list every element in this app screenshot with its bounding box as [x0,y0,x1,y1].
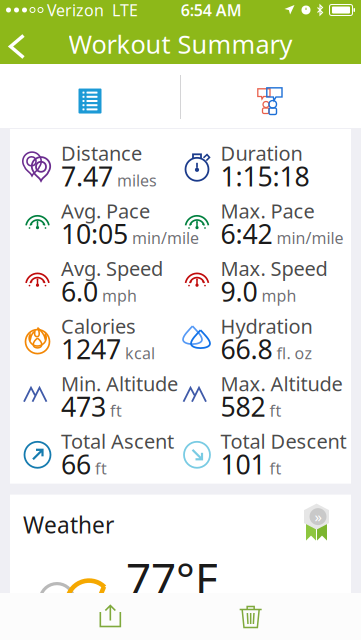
staticText: 6:54 AM [181,0,242,21]
staticText: mph [261,285,296,306]
button[interactable]: Share [80,593,140,639]
staticText: Max. Pace [220,197,314,224]
staticText: 77°F [126,549,218,607]
staticText: 10:05 [61,216,128,251]
staticText: ft [110,400,122,421]
staticText: kcal [125,342,155,364]
staticText: Verizon LTE [43,0,138,21]
staticText: Max. Speed [220,255,327,282]
staticText: Total Descent [220,428,346,454]
staticText: 7.47 [61,158,113,194]
staticText: Workout Summary [68,27,292,61]
staticText: Avg. Pace [61,197,150,224]
staticText: ft [269,400,281,421]
staticText: 6.0 [61,274,98,309]
staticText: 101 [220,446,265,482]
staticText: ft [95,458,107,479]
staticText: Min. Altitude [61,370,178,397]
button[interactable]: Summary [0,66,180,128]
staticText: Avg. Speed [61,255,163,282]
button[interactable]: Back [0,20,37,64]
staticText: » [314,507,321,526]
staticText: 1:15:18 [220,158,309,194]
staticText: 473 [61,389,106,424]
button[interactable]: Delete [221,593,281,639]
staticText: min/mile [276,227,343,248]
staticText: 66.8 [220,331,272,367]
staticText: min/mile [132,227,199,248]
staticText: 1247 [61,331,121,367]
staticText: fl. oz [276,342,312,364]
staticText: Duration [220,140,302,166]
staticText: 6:42 [220,216,272,251]
staticText: Distance [61,140,142,166]
staticText: Calories [61,313,136,339]
staticText: miles [117,170,157,191]
staticText: 582 [220,389,265,424]
staticText: Max. Altitude [220,370,342,397]
staticText: 66 [61,446,91,482]
staticText: ft [269,458,281,479]
staticText: Weather [23,509,114,540]
staticText: Hydration [220,313,312,339]
button[interactable]: Social [181,66,361,128]
staticText: 9.0 [220,274,257,309]
staticText: mph [102,285,137,306]
staticText: Total Ascent [61,428,174,454]
